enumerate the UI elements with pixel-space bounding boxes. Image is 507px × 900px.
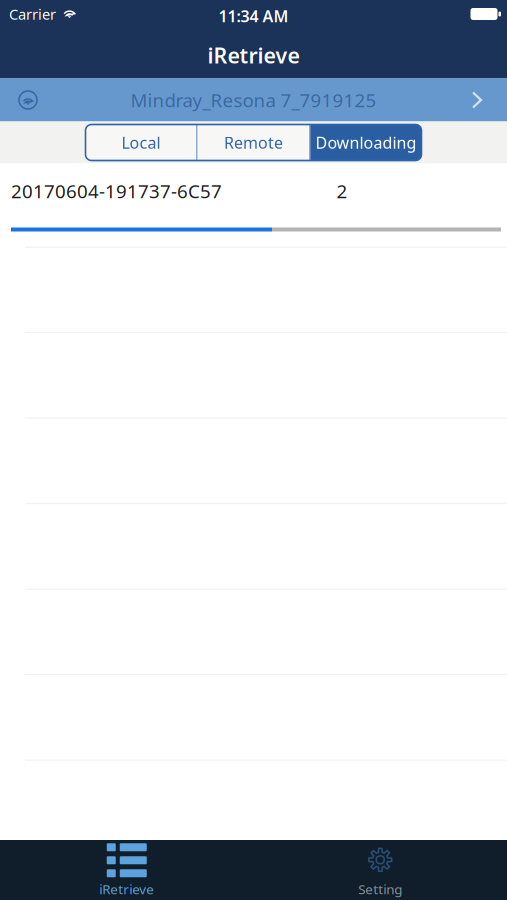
staticText: 11:34 AM xyxy=(218,5,288,27)
staticText: Mindray_Resona 7_7919125 xyxy=(130,88,376,112)
staticText: Remote xyxy=(224,132,283,153)
button[interactable]: Local xyxy=(85,124,196,160)
button[interactable]: Setting xyxy=(253,840,507,900)
staticText: Local xyxy=(121,132,160,153)
button[interactable]: Remote xyxy=(197,124,309,160)
button[interactable]: iRetrieve xyxy=(0,840,253,900)
staticText: iRetrieve xyxy=(99,880,154,898)
staticText: 2 xyxy=(336,179,347,203)
button[interactable]: Mindray_Resona 7_7919125 xyxy=(0,78,507,121)
staticText: iRetrieve xyxy=(207,41,299,69)
staticText: Carrier xyxy=(9,4,56,24)
staticText: 20170604-191737-6C57 xyxy=(11,179,222,203)
staticText: Setting xyxy=(358,880,402,898)
staticText: Downloading xyxy=(315,132,416,153)
button[interactable]: Downloading xyxy=(310,124,421,160)
